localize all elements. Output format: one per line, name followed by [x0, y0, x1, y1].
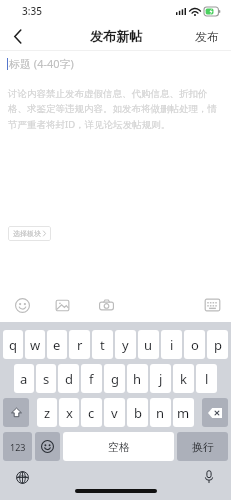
button[interactable]: Emoji	[10, 293, 34, 317]
button[interactable]: 发布	[191, 24, 223, 49]
staticText: 123	[10, 441, 26, 453]
staticText: o	[191, 336, 199, 354]
staticText: q	[9, 336, 17, 354]
staticText: t	[100, 336, 105, 354]
button[interactable]: Add image	[50, 293, 74, 317]
button[interactable]: l	[196, 364, 217, 393]
button[interactable]: Shift	[3, 398, 29, 427]
button[interactable]: 标题 (4-40字)	[7, 56, 231, 71]
staticText: h	[133, 370, 142, 388]
staticText: u	[144, 336, 153, 354]
button[interactable]: k	[173, 364, 194, 393]
staticText: y	[122, 336, 129, 354]
staticText: 空格	[108, 440, 130, 454]
staticText: a	[20, 370, 28, 388]
button[interactable]: b	[127, 398, 148, 427]
staticText: m	[177, 404, 190, 422]
button[interactable]: Camera	[94, 293, 118, 317]
staticText: p	[214, 336, 222, 354]
button[interactable]: m	[173, 398, 194, 427]
staticText: c	[88, 404, 95, 422]
staticText: 选择板块	[13, 229, 41, 238]
button[interactable]: g	[104, 364, 125, 393]
staticText: l	[205, 370, 209, 388]
staticText: b	[134, 404, 142, 422]
staticText: v	[111, 404, 118, 422]
staticText: 标题 (4-40字)	[9, 56, 74, 71]
staticText: e	[53, 336, 61, 354]
button[interactable]: r	[69, 330, 90, 359]
staticText: 换行	[192, 440, 214, 454]
staticText: 3:35	[22, 4, 42, 18]
button[interactable]: o	[184, 330, 205, 359]
button[interactable]: 讨论内容禁止发布虚假信息、代购信息、折扣价格、求鉴定等违规内容。如发布将做删帖处…	[8, 88, 223, 131]
button[interactable]: t	[92, 330, 113, 359]
button[interactable]: 换行	[177, 432, 228, 461]
staticText: f	[89, 370, 94, 388]
button[interactable]: q	[3, 330, 23, 359]
button[interactable]: n	[150, 398, 171, 427]
button[interactable]: z	[37, 398, 57, 427]
staticText: z	[44, 404, 51, 422]
button[interactable]: 123	[3, 432, 32, 461]
button[interactable]: e	[47, 330, 67, 359]
staticText: 发布	[195, 29, 219, 44]
staticText: g	[111, 370, 119, 388]
staticText: i	[170, 336, 174, 354]
button[interactable]: w	[25, 330, 45, 359]
button[interactable]: j	[150, 364, 171, 393]
button[interactable]: i	[161, 330, 182, 359]
staticText: 讨论内容禁止发布虚假信息、代购信息、折扣价格、求鉴定等违规内容。如发布将做删帖处…	[8, 88, 223, 131]
button[interactable]: a	[14, 364, 34, 393]
button[interactable]: Dictation	[198, 466, 220, 488]
staticText: 发布新帖	[90, 28, 142, 44]
button[interactable]: s	[36, 364, 56, 393]
button[interactable]: x	[59, 398, 79, 427]
button[interactable]: 选择板块	[8, 226, 51, 241]
button[interactable]: u	[138, 330, 159, 359]
button[interactable]: Change keyboard language	[11, 466, 33, 488]
staticText: k	[180, 370, 187, 388]
staticText: x	[66, 404, 73, 422]
button[interactable]: v	[104, 398, 125, 427]
button[interactable]: f	[81, 364, 102, 393]
button[interactable]: Emoji keyboard	[35, 432, 60, 461]
staticText: j	[159, 370, 163, 388]
button[interactable]: c	[81, 398, 102, 427]
button[interactable]: Back	[0, 22, 36, 50]
staticText: n	[156, 404, 165, 422]
button[interactable]: Hide keyboard	[200, 293, 224, 317]
button[interactable]: Backspace	[202, 398, 228, 427]
button[interactable]: p	[207, 330, 228, 359]
button[interactable]: d	[58, 364, 79, 393]
button[interactable]: y	[115, 330, 136, 359]
staticText: s	[43, 370, 50, 388]
staticText: w	[30, 336, 41, 354]
button[interactable]: h	[127, 364, 148, 393]
staticText: r	[77, 336, 83, 354]
staticText: d	[65, 370, 73, 388]
button[interactable]: 空格	[63, 432, 174, 461]
